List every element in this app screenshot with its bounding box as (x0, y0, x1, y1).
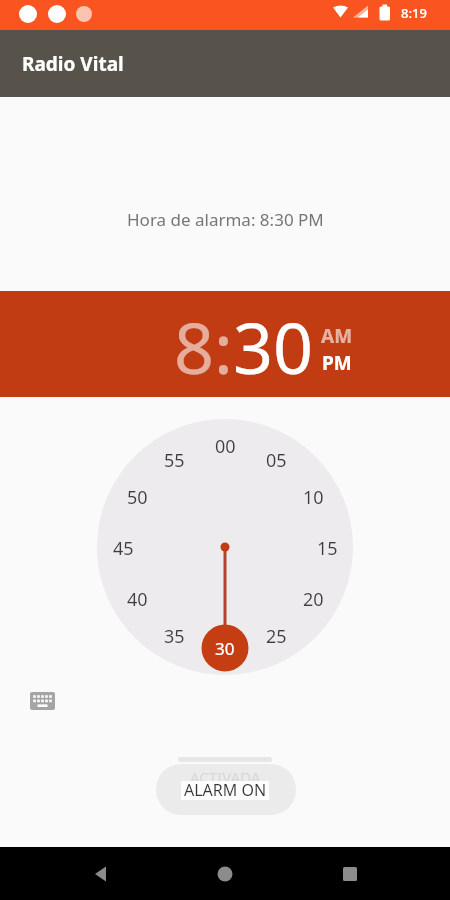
button[interactable] (203, 852, 247, 896)
staticText: 40 (127, 587, 148, 609)
staticText: 8:19 (401, 4, 427, 22)
staticText: Hora de alarma: 8:30 PM (127, 208, 324, 231)
staticText: ACTIVADA (190, 767, 261, 787)
staticText: 05 (266, 448, 287, 470)
staticText: 15 (317, 536, 338, 558)
button[interactable] (328, 852, 372, 896)
staticText: 55 (164, 448, 185, 470)
staticText: AM (321, 323, 353, 345)
button[interactable] (79, 852, 123, 896)
staticText: 8: (174, 299, 233, 394)
staticText: 45 (113, 536, 134, 558)
staticText: Radio Vital (22, 51, 124, 77)
staticText: PM (322, 350, 352, 372)
staticText: 30 (215, 637, 235, 660)
button[interactable] (24, 686, 60, 716)
staticText: 25 (266, 624, 287, 646)
staticText: 50 (127, 485, 148, 507)
staticText: ALARM ON (184, 779, 267, 801)
staticText: 30 (233, 299, 314, 394)
button[interactable] (156, 764, 296, 815)
staticText: 00 (215, 434, 236, 456)
staticText: 10 (303, 485, 324, 507)
staticText: 20 (303, 587, 324, 609)
staticText: 35 (164, 624, 185, 646)
